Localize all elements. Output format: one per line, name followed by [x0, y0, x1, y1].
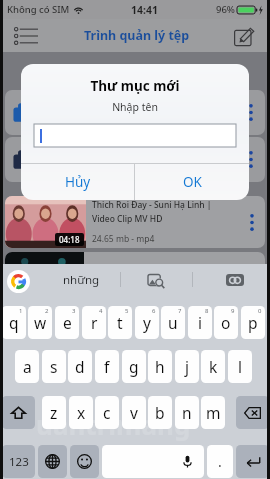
staticText: 2	[45, 307, 49, 315]
button[interactable]: Backspace	[236, 396, 269, 429]
staticText: w	[34, 312, 47, 333]
button[interactable]: p	[241, 306, 265, 339]
button[interactable]: x	[69, 396, 93, 429]
staticText: 24.65 mb - mp4	[92, 233, 155, 245]
button[interactable]: w	[28, 306, 52, 339]
button[interactable]: t	[108, 306, 132, 339]
staticText: v	[130, 402, 138, 423]
button[interactable]: f	[95, 350, 119, 383]
staticText: c	[103, 402, 111, 423]
staticText: 8	[205, 307, 209, 315]
staticText: b	[155, 402, 165, 423]
staticText: uantrimang	[36, 407, 191, 442]
button[interactable]: Space	[102, 445, 204, 478]
button[interactable]: Compose	[233, 24, 257, 48]
button[interactable]: b	[148, 396, 172, 429]
button[interactable]	[5, 90, 265, 135]
staticText: m	[206, 402, 221, 423]
staticText: o	[221, 312, 231, 333]
staticText: 14:41	[131, 3, 158, 17]
staticText: Trình quản lý tệp	[84, 27, 190, 44]
button[interactable]: r	[82, 306, 106, 339]
staticText: 1	[19, 307, 23, 315]
staticText: Thich Roi Ðay - Suni Hạ Linh |	[92, 199, 212, 211]
staticText: t	[117, 312, 123, 333]
staticText: h	[155, 356, 165, 377]
staticText: 6	[152, 307, 156, 315]
button[interactable]: Language	[38, 445, 67, 478]
button[interactable]: i	[188, 306, 212, 339]
staticText: g	[129, 356, 139, 377]
button[interactable]: a	[15, 350, 39, 383]
button[interactable]	[5, 137, 265, 182]
staticText: 9	[231, 307, 235, 315]
staticText: 04:18	[59, 234, 80, 245]
staticText: OK	[183, 173, 202, 191]
button[interactable]: 123	[2, 445, 35, 478]
staticText: s	[50, 356, 58, 377]
button[interactable]	[34, 124, 236, 147]
button[interactable]: c	[95, 396, 119, 429]
button[interactable]: Google	[7, 270, 30, 293]
staticText: 5	[125, 307, 129, 315]
staticText: 96%	[216, 3, 235, 16]
staticText: 0	[258, 307, 262, 315]
button[interactable]: OK	[135, 164, 249, 200]
button[interactable]: k	[201, 350, 225, 383]
staticText: y	[143, 312, 151, 333]
staticText: Không có SIM	[7, 3, 70, 16]
button[interactable]: e	[55, 306, 79, 339]
button[interactable]: y	[135, 306, 159, 339]
button[interactable]: Shift	[2, 396, 35, 429]
staticText: r	[91, 312, 98, 333]
button[interactable]: j	[175, 350, 199, 383]
staticText: u	[168, 312, 178, 333]
button[interactable]: .	[207, 445, 233, 478]
button[interactable]: v	[122, 396, 146, 429]
button[interactable]: GIF	[223, 268, 247, 292]
button[interactable]: Emoji	[70, 445, 99, 478]
button[interactable]: z	[42, 396, 66, 429]
staticText: q	[9, 312, 19, 333]
staticText: d	[75, 356, 85, 377]
staticText: Hủy	[65, 173, 91, 191]
staticText: p	[248, 312, 258, 333]
button[interactable]: Hủy	[21, 164, 134, 200]
staticText: 4	[99, 307, 103, 315]
button[interactable]: g	[122, 350, 146, 383]
button[interactable]	[5, 252, 265, 264]
button[interactable]: h	[148, 350, 172, 383]
staticText: x	[77, 402, 86, 423]
staticText: e	[63, 312, 72, 333]
staticText: j	[185, 356, 189, 377]
button[interactable]: Image search	[144, 268, 168, 292]
staticText: Thư mục mới	[21, 77, 249, 95]
staticText: n	[182, 402, 192, 423]
button[interactable]: d	[68, 350, 92, 383]
button[interactable]: s	[42, 350, 66, 383]
button[interactable]: 04:18	[5, 196, 265, 248]
button[interactable]: m	[201, 396, 225, 429]
button[interactable]: q	[2, 306, 26, 339]
button[interactable]: o	[214, 306, 238, 339]
button[interactable]: Menu	[14, 24, 44, 48]
button[interactable]: Enter	[236, 445, 269, 478]
staticText: những	[63, 272, 100, 288]
button[interactable]: u	[161, 306, 185, 339]
button[interactable]: l	[228, 350, 252, 383]
staticText: 123	[9, 454, 29, 470]
staticText: i	[198, 312, 202, 333]
staticText: z	[50, 402, 58, 423]
staticText: 3	[72, 307, 76, 315]
staticText: 7	[178, 307, 182, 315]
staticText: Video Clip MV HD	[92, 213, 163, 225]
staticText: a	[23, 356, 32, 377]
staticText: Nhập tên	[21, 100, 249, 114]
staticText: .	[218, 452, 222, 471]
button[interactable]: n	[175, 396, 199, 429]
staticText: k	[209, 356, 218, 377]
staticText: f	[104, 356, 110, 377]
staticText: l	[238, 356, 242, 377]
